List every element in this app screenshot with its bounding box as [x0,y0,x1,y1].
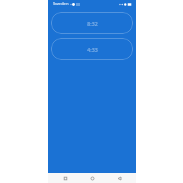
button[interactable]: Back [118,173,121,183]
button[interactable]: Home [91,173,94,183]
button[interactable]: Recents [64,173,67,183]
button[interactable]: 4:33 [51,38,133,60]
staticText: Sweden [53,1,69,7]
button[interactable]: 8:32 [51,12,133,34]
staticText: 8:32 [87,20,98,27]
staticText: 4:33 [87,46,98,53]
